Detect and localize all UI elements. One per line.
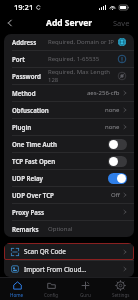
- staticText: UDP Over TCP: [12, 191, 54, 199]
- staticText: Optional: [48, 225, 73, 233]
- staticText: Off: [111, 191, 120, 199]
- button[interactable]: Obfuscation: [4, 102, 134, 118]
- staticText: Import From Cloud...: [24, 265, 87, 274]
- staticText: Settings: [112, 292, 130, 298]
- staticText: Plugin: [12, 123, 32, 131]
- staticText: Remarks: [12, 225, 39, 233]
- button[interactable]: Save: [113, 18, 130, 28]
- button[interactable]: Guru: [68, 278, 103, 300]
- button[interactable]: Scan QR Code: [4, 243, 134, 260]
- staticText: UDP Relay: [12, 174, 43, 182]
- staticText: Password: [12, 72, 41, 80]
- button[interactable]: Method: [4, 85, 134, 101]
- staticText: aes-256-cfb: [87, 89, 120, 97]
- button[interactable]: Address: [4, 34, 134, 50]
- staticText: Save: [113, 18, 130, 28]
- button[interactable]: Port: [4, 51, 134, 67]
- staticText: Config: [44, 292, 59, 298]
- staticText: Port: [12, 55, 25, 63]
- button[interactable]: Settings: [103, 278, 138, 300]
- button[interactable]: UDP Over TCP: [4, 187, 134, 203]
- staticText: TCP Fast Open: [12, 157, 56, 165]
- staticText: Address: [12, 38, 37, 46]
- staticText: 19:21: [14, 2, 34, 12]
- button[interactable]: Import From Cloud...: [4, 261, 134, 277]
- staticText: Obfuscation: [12, 106, 49, 114]
- button[interactable]: UDP Relay: [4, 170, 134, 186]
- button[interactable]: Back: [0, 14, 20, 31]
- staticText: none: [105, 106, 120, 114]
- button[interactable]: Remarks: [4, 221, 134, 237]
- button[interactable]: Proxy Pass: [4, 204, 134, 220]
- staticText: Guru: [80, 292, 91, 298]
- staticText: Required, Max Length 128: [48, 68, 116, 84]
- button[interactable]: Config: [34, 278, 68, 300]
- button[interactable]: Plugin: [4, 119, 134, 135]
- button[interactable]: Password: [4, 68, 134, 84]
- staticText: Add Server: [46, 17, 93, 29]
- staticText: Scan QR Code: [24, 247, 66, 256]
- button[interactable]: One Time Auth: [4, 136, 134, 152]
- staticText: One Time Auth: [12, 140, 58, 148]
- button[interactable]: TCP Fast Open: [4, 153, 134, 169]
- staticText: Method: [12, 89, 36, 97]
- staticText: Home: [10, 292, 24, 298]
- staticText: Required, 1-65535: [48, 55, 100, 63]
- staticText: none: [105, 123, 120, 131]
- staticText: Required, Domain or IP: [48, 38, 114, 46]
- button[interactable]: Home: [0, 278, 34, 300]
- staticText: Proxy Pass: [12, 208, 45, 216]
